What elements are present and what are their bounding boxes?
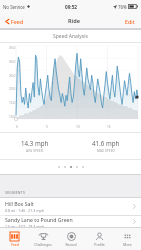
staticText: 25.0	[9, 74, 16, 78]
staticText: 09:52	[65, 4, 78, 10]
button[interactable]: Record	[57, 228, 85, 250]
button[interactable]: Sandy Lane to Pound Green	[0, 216, 141, 227]
button[interactable]: Feed	[4, 16, 25, 27]
staticText: 10.0	[9, 115, 16, 119]
staticText: 35.0	[9, 46, 16, 50]
staticText: 41.6 mph	[92, 139, 120, 147]
button[interactable]: Hill Box Salt	[0, 198, 141, 215]
staticText: 0	[16, 125, 18, 129]
staticText: Feed	[11, 242, 19, 247]
staticText: 76%	[118, 4, 127, 10]
staticText: Record	[65, 242, 77, 247]
staticText: MAX SPEED	[97, 149, 115, 153]
button[interactable]: Feed	[0, 228, 29, 250]
staticText: Profile	[94, 242, 105, 247]
staticText: 0.8 mi · 1:46 · 21.3 mph	[5, 208, 44, 213]
staticText: Speed Analysis	[53, 33, 88, 40]
staticText: More	[123, 242, 132, 247]
staticText: 15.0	[9, 101, 16, 105]
button[interactable]: Edit	[123, 16, 137, 27]
staticText: AVG SPEED	[26, 149, 44, 153]
button[interactable]: More	[113, 228, 141, 250]
staticText: Sandy Lane to Pound Green	[5, 216, 73, 223]
staticText: No Service	[3, 4, 25, 10]
staticText: Challenges	[34, 242, 52, 247]
button[interactable]: Profile	[85, 228, 113, 250]
staticText: Edit	[125, 18, 135, 25]
staticText: Ride	[68, 17, 80, 25]
staticText: 30.0	[9, 60, 16, 64]
staticText: 15	[107, 125, 111, 129]
staticText: SEGMENTS	[5, 190, 26, 195]
staticText: 1.6 mi · 4:02 · 18.4 mph	[5, 224, 44, 227]
staticText: 14.3 mph	[21, 139, 49, 147]
staticText: 20.0	[9, 87, 16, 91]
staticText: 5	[46, 125, 48, 129]
staticText: Feed	[11, 18, 24, 25]
staticText: Hill Box Salt	[5, 200, 34, 207]
button[interactable]: Challenges	[29, 228, 57, 250]
staticText: 10	[76, 125, 80, 129]
